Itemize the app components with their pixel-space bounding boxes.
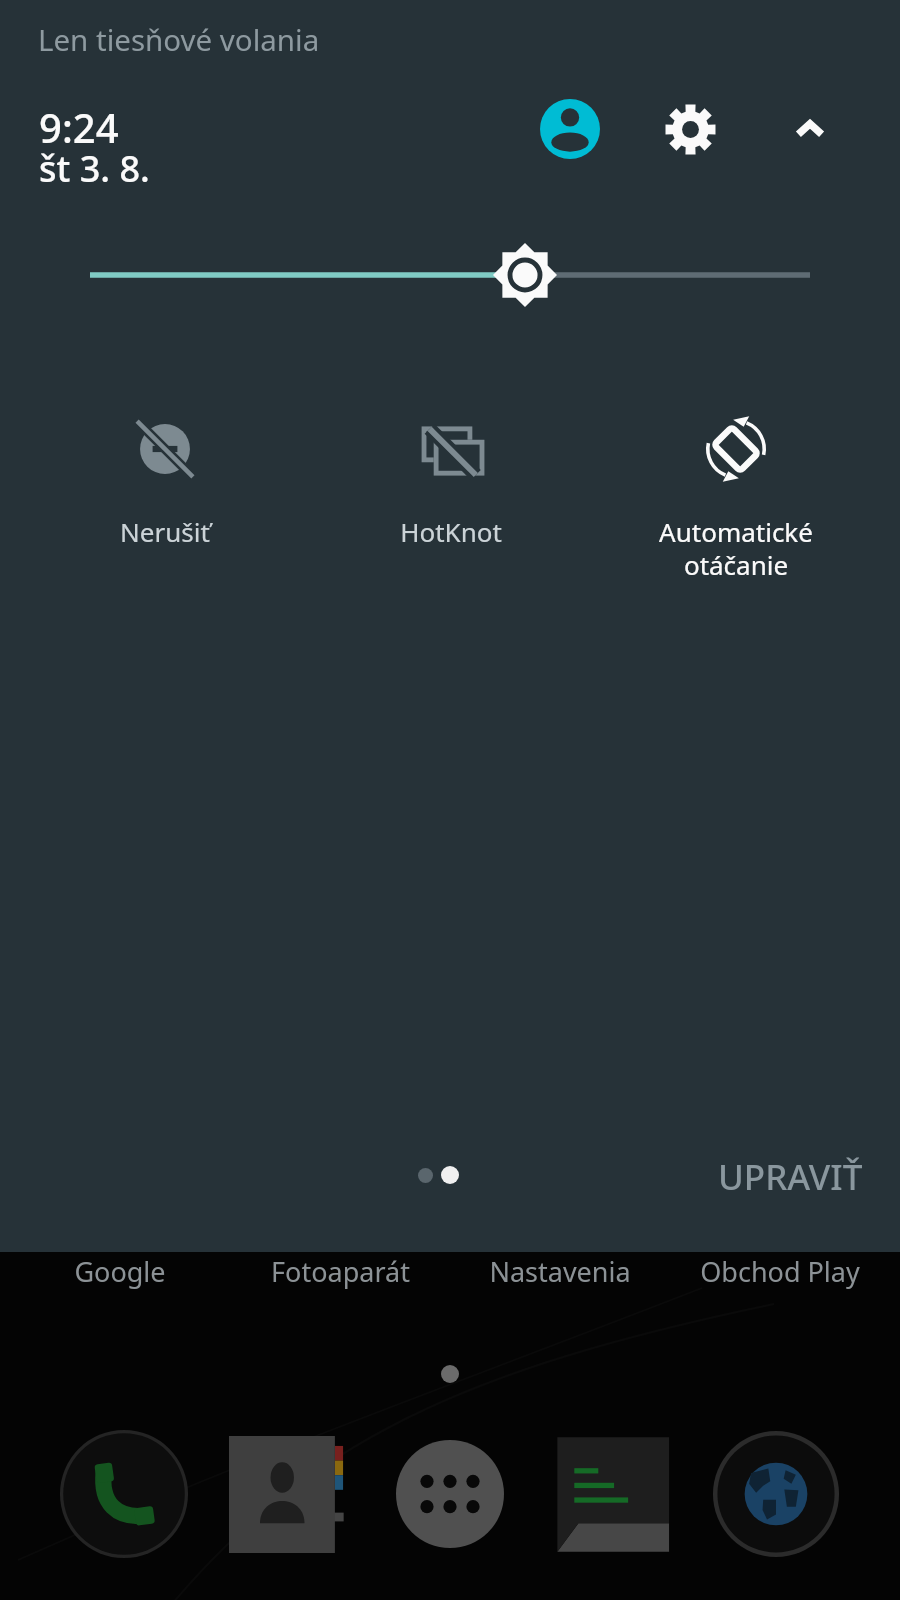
button[interactable]: User account [526, 85, 614, 173]
button[interactable]: Fotoaparát [230, 1247, 450, 1296]
staticText: Obchod Play [700, 1253, 860, 1290]
button[interactable]: Automatické otáčanie [593, 418, 878, 583]
button[interactable]: Obchod Play [670, 1247, 890, 1296]
staticText: Automatické otáčanie [659, 514, 813, 583]
button[interactable]: Messaging [548, 1429, 678, 1559]
staticText: Google [74, 1253, 166, 1290]
staticText: Fotoaparát [271, 1253, 410, 1290]
button[interactable]: Nerušiť [22, 418, 308, 549]
button[interactable]: Settings [646, 85, 734, 173]
staticText: Nastavenia [489, 1253, 631, 1290]
button[interactable]: UPRAVIŤ [694, 1131, 887, 1223]
button[interactable]: Contacts [222, 1429, 352, 1559]
button[interactable]: All apps [385, 1429, 515, 1559]
staticText: Nerušiť [120, 514, 210, 549]
staticText: Len tiesňové volania [38, 19, 320, 59]
button[interactable]: HotKnot [308, 418, 593, 549]
staticText: UPRAVIŤ [718, 1153, 863, 1201]
button[interactable]: Google [10, 1247, 230, 1296]
button[interactable]: Collapse quick settings [766, 85, 854, 173]
button[interactable]: Phone [59, 1429, 189, 1559]
staticText: HotKnot [400, 514, 502, 549]
staticText: št 3. 8. [39, 144, 150, 193]
button[interactable]: Browser [711, 1429, 841, 1559]
button[interactable]: Nastavenia [450, 1247, 670, 1296]
staticText: 9:24 [39, 100, 119, 154]
